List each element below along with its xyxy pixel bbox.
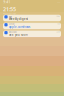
- staticText: 22m: [57, 31, 60, 33]
- staticText: 21:55: [3, 6, 16, 13]
- button[interactable]: MESSAGES: [3, 31, 61, 37]
- button[interactable]: SAFARI: [3, 23, 61, 29]
- staticText: MAIL: [9, 15, 12, 17]
- staticText: 9m: [58, 23, 60, 25]
- staticText: See you soon: [9, 33, 28, 36]
- staticText: •••: [57, 1, 60, 3]
- staticText: SAFARI: [9, 23, 14, 25]
- staticText: now: [57, 15, 60, 17]
- staticText: apple.com/news: [9, 25, 30, 29]
- staticText: Wednesday 17 July: [3, 13, 16, 15]
- button[interactable]: MAIL: [3, 15, 61, 21]
- staticText: MESSAGES: [9, 31, 17, 33]
- staticText: 9:41: [3, 0, 10, 4]
- staticText: Weekly digest: [9, 17, 28, 21]
